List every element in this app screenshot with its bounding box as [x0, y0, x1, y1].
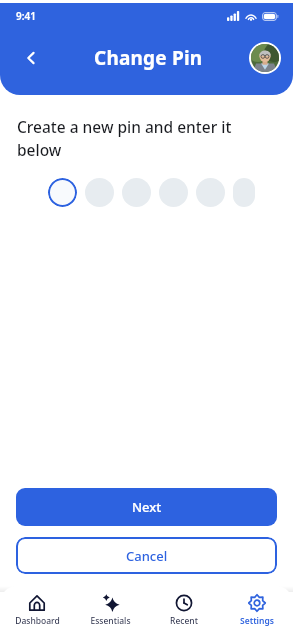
- staticText: Essentials: [90, 615, 131, 627]
- staticText: Next: [132, 498, 162, 516]
- button[interactable]: Back: [14, 41, 48, 75]
- button[interactable]: [48, 178, 77, 207]
- button[interactable]: [85, 178, 114, 207]
- button[interactable]: Profile: [251, 44, 279, 72]
- staticText: 9:41: [16, 9, 36, 23]
- button[interactable]: Recent: [147, 586, 220, 635]
- button[interactable]: [233, 178, 255, 207]
- button[interactable]: [159, 178, 188, 207]
- button[interactable]: Cancel: [16, 537, 277, 574]
- staticText: Recent: [170, 615, 198, 627]
- button[interactable]: Essentials: [74, 586, 147, 635]
- button[interactable]: Dashboard: [0, 586, 74, 635]
- button[interactable]: [122, 178, 151, 207]
- staticText: Settings: [240, 615, 274, 627]
- button[interactable]: Settings: [220, 586, 293, 635]
- staticText: Create a new pin and enter it below: [17, 116, 259, 161]
- button[interactable]: [196, 178, 225, 207]
- staticText: Dashboard: [15, 615, 60, 627]
- staticText: Cancel: [126, 547, 168, 565]
- button[interactable]: Next: [16, 488, 277, 526]
- staticText: Change Pin: [94, 45, 203, 71]
